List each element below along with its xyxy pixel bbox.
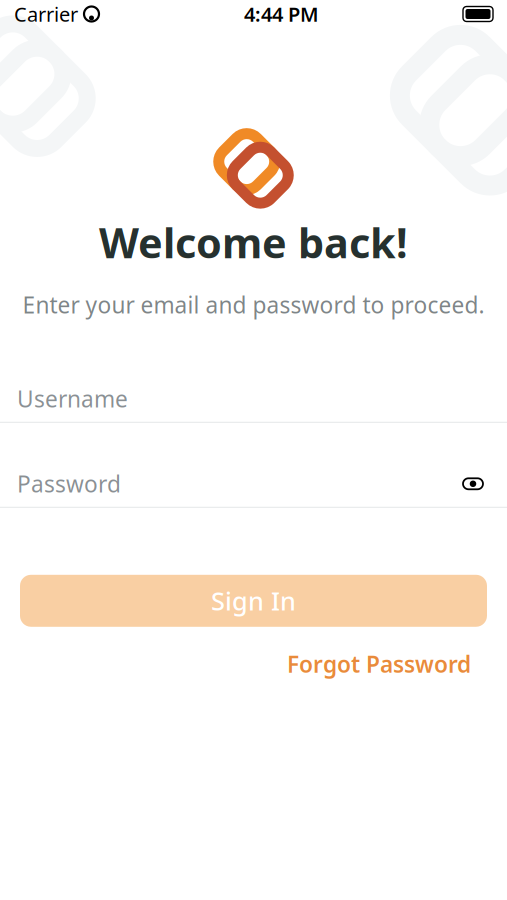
staticText: Password (17, 469, 121, 499)
button[interactable]: Show password (456, 469, 490, 499)
staticText: Enter your email and password to proceed… (22, 290, 484, 320)
staticText: Forgot Password (287, 649, 471, 679)
staticText: 4:44 PM (244, 1, 319, 27)
staticText: Username (17, 384, 128, 414)
staticText: Sign In (211, 584, 296, 618)
button[interactable]: Forgot Password (287, 641, 471, 687)
button[interactable]: Sign In (20, 575, 487, 627)
staticText: Welcome back! (99, 215, 408, 270)
staticText: Carrier (14, 1, 78, 27)
